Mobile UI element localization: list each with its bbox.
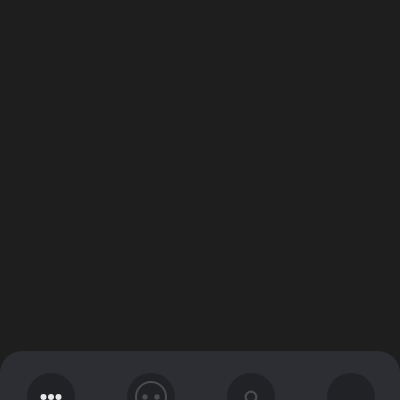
button[interactable]: Face [127, 373, 175, 400]
button[interactable]: Menu [327, 373, 375, 400]
button[interactable]: Settings [227, 373, 275, 400]
button[interactable]: More options [27, 373, 75, 400]
